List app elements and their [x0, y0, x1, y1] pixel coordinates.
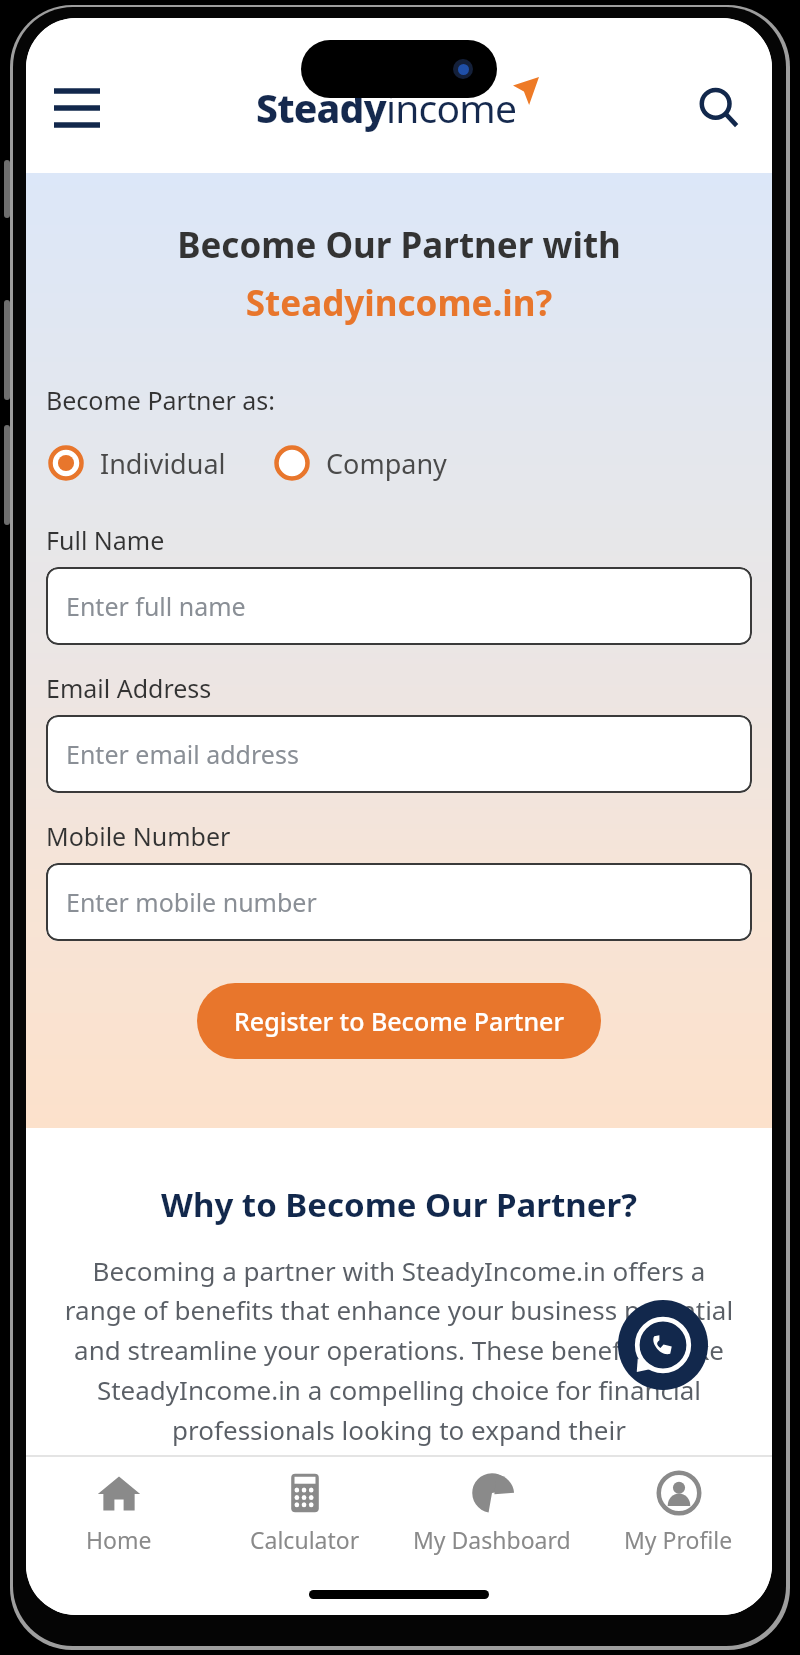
button[interactable]: Home [26, 1470, 212, 1581]
staticText: income [386, 81, 517, 134]
staticText: Individual [100, 445, 226, 482]
button[interactable]: Enter mobile number [46, 863, 752, 941]
button[interactable]: WhatsApp chat [618, 1300, 708, 1390]
staticText: My Dashboard [413, 1524, 571, 1555]
staticText: Email Address [46, 671, 212, 705]
staticText: Enter email address [66, 737, 299, 771]
button[interactable]: Steady [256, 81, 543, 134]
staticText: Full Name [46, 523, 165, 557]
staticText: Become Our Partner with [26, 221, 772, 269]
staticText: Calculator [250, 1524, 360, 1555]
staticText: Why to Become Our Partner? [161, 1182, 637, 1227]
staticText: Steady [256, 81, 386, 134]
button[interactable]: My Dashboard [398, 1470, 585, 1581]
button[interactable]: Menu [46, 77, 108, 139]
button[interactable]: Register to Become Partner [197, 983, 601, 1059]
staticText: Mobile Number [46, 819, 231, 853]
staticText: Become Partner as: [46, 383, 276, 417]
button[interactable]: Enter email address [46, 715, 752, 793]
button[interactable]: Company [270, 439, 449, 487]
staticText: My Profile [624, 1524, 733, 1555]
staticText: Company [326, 445, 447, 482]
button[interactable]: Calculator [212, 1470, 398, 1581]
button[interactable]: Individual [44, 439, 228, 487]
button[interactable]: My Profile [585, 1470, 772, 1581]
button[interactable]: Search [688, 77, 750, 139]
staticText: Home [86, 1524, 152, 1555]
staticText: Becoming a partner with SteadyIncome.in … [56, 1253, 742, 1448]
staticText: Register to Become Partner [234, 1004, 564, 1038]
staticText: Enter full name [66, 589, 246, 623]
staticText: Enter mobile number [66, 885, 317, 919]
staticText: Steadyincome.in? [26, 279, 772, 327]
button[interactable]: Enter full name [46, 567, 752, 645]
